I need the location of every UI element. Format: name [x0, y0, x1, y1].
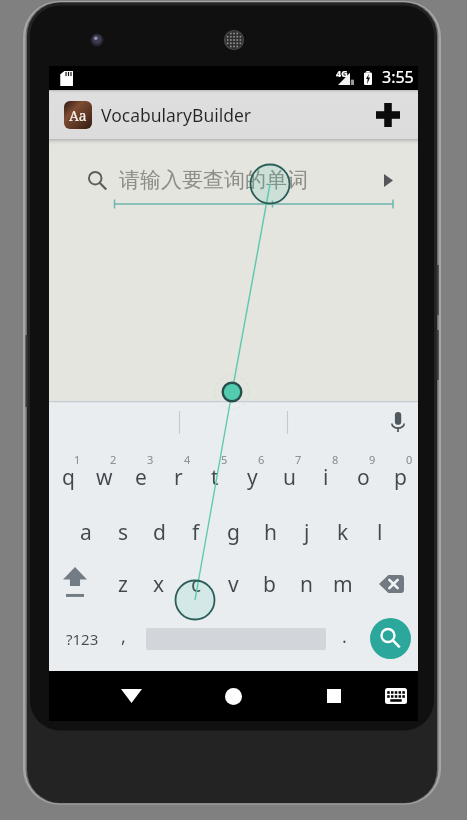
- button[interactable]: f: [178, 501, 214, 556]
- staticText: h: [264, 518, 277, 547]
- staticText: 3:55: [382, 66, 414, 88]
- staticText: 6: [258, 452, 265, 467]
- staticText: u: [283, 463, 296, 492]
- staticText: ?123: [66, 629, 99, 649]
- staticText: VocabularyBuilder: [101, 103, 252, 127]
- button[interactable]: n: [288, 556, 324, 611]
- staticText: a: [80, 518, 92, 547]
- staticText: p: [394, 463, 407, 492]
- button[interactable]: 4: [160, 446, 196, 501]
- staticText: 7: [295, 452, 302, 467]
- button[interactable]: z: [105, 556, 141, 611]
- staticText: c: [191, 570, 202, 599]
- staticText: z: [118, 570, 128, 599]
- button[interactable]: [141, 611, 327, 666]
- button[interactable]: .: [327, 611, 361, 666]
- button[interactable]: 1: [50, 446, 86, 501]
- staticText: 请输入要查询的单词: [119, 167, 308, 193]
- button[interactable]: d: [141, 501, 177, 556]
- button[interactable]: Add word: [366, 93, 410, 137]
- staticText: 0: [406, 452, 413, 467]
- button[interactable]: Switch keyboard: [374, 671, 418, 721]
- staticText: t: [211, 463, 219, 492]
- button[interactable]: a: [68, 501, 104, 556]
- button[interactable]: Backspace: [367, 556, 415, 611]
- staticText: r: [174, 463, 183, 492]
- other: Search icon: [88, 171, 107, 190]
- button[interactable]: 3: [123, 446, 159, 501]
- button[interactable]: Home: [209, 671, 257, 721]
- button[interactable]: c: [178, 556, 214, 611]
- staticText: 3: [147, 452, 154, 467]
- button[interactable]: Voice input: [383, 407, 412, 436]
- button[interactable]: g: [215, 501, 251, 556]
- staticText: w: [96, 463, 113, 492]
- staticText: 2: [110, 452, 117, 467]
- staticText: x: [153, 570, 165, 599]
- staticText: o: [357, 463, 370, 492]
- button[interactable]: l: [362, 501, 398, 556]
- button[interactable]: ,: [105, 611, 141, 666]
- staticText: q: [62, 463, 75, 492]
- staticText: i: [323, 463, 329, 492]
- staticText: v: [228, 570, 239, 599]
- staticText: k: [337, 518, 349, 547]
- button[interactable]: 2: [86, 446, 122, 501]
- staticText: .: [342, 624, 347, 649]
- button[interactable]: s: [105, 501, 141, 556]
- button[interactable]: Go: [375, 167, 401, 193]
- button[interactable]: Recent apps: [310, 671, 358, 721]
- staticText: 4: [184, 452, 191, 467]
- staticText: l: [377, 518, 383, 547]
- staticText: 9: [369, 452, 376, 467]
- staticText: 4G: [336, 67, 348, 79]
- staticText: Aa: [69, 106, 87, 125]
- button[interactable]: 6: [234, 446, 270, 501]
- button[interactable]: ?123: [51, 611, 113, 666]
- button[interactable]: h: [252, 501, 288, 556]
- staticText: f: [192, 518, 200, 547]
- button[interactable]: x: [141, 556, 177, 611]
- staticText: j: [304, 518, 310, 547]
- staticText: b: [263, 570, 276, 599]
- staticText: s: [118, 518, 129, 547]
- staticText: 1: [74, 452, 81, 467]
- button[interactable]: Search: [370, 618, 411, 659]
- staticText: y: [247, 463, 258, 492]
- button[interactable]: 0: [382, 446, 418, 501]
- button[interactable]: 7: [271, 446, 307, 501]
- staticText: e: [135, 463, 147, 492]
- staticText: g: [227, 518, 240, 547]
- button[interactable]: j: [289, 501, 325, 556]
- button[interactable]: Shift: [54, 556, 96, 611]
- staticText: d: [153, 518, 166, 547]
- button[interactable]: k: [325, 501, 361, 556]
- button[interactable]: 8: [308, 446, 344, 501]
- button[interactable]: v: [215, 556, 251, 611]
- button[interactable]: 9: [345, 446, 381, 501]
- button[interactable]: m: [325, 556, 361, 611]
- button[interactable]: 5: [197, 446, 233, 501]
- button[interactable]: b: [251, 556, 287, 611]
- button[interactable]: Back: [107, 671, 155, 721]
- staticText: 5: [221, 452, 228, 467]
- staticText: ,: [121, 624, 126, 649]
- staticText: m: [333, 570, 353, 599]
- staticText: 8: [332, 452, 339, 467]
- staticText: n: [300, 570, 313, 599]
